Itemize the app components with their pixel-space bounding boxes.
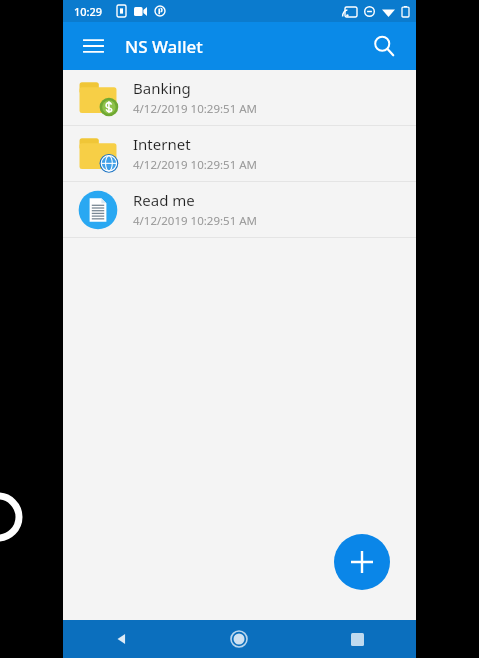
- staticText: 10:29: [74, 4, 103, 19]
- button[interactable]: Back: [63, 620, 180, 658]
- button[interactable]: Read me: [63, 182, 416, 237]
- button[interactable]: Add item: [334, 534, 390, 590]
- staticText: Banking: [133, 78, 191, 98]
- staticText: NS Wallet: [125, 35, 203, 58]
- button[interactable]: Recent apps: [298, 620, 416, 658]
- staticText: Read me: [133, 190, 195, 210]
- button[interactable]: Internet: [63, 126, 416, 181]
- staticText: 4/12/2019 10:29:51 AM: [133, 213, 257, 229]
- button[interactable]: Home: [180, 620, 298, 658]
- button[interactable]: Banking: [63, 70, 416, 125]
- button[interactable]: Open navigation menu: [75, 28, 111, 64]
- staticText: Internet: [133, 134, 191, 154]
- staticText: 4/12/2019 10:29:51 AM: [133, 157, 257, 173]
- button[interactable]: Search: [364, 26, 404, 66]
- staticText: 4/12/2019 10:29:51 AM: [133, 101, 257, 117]
